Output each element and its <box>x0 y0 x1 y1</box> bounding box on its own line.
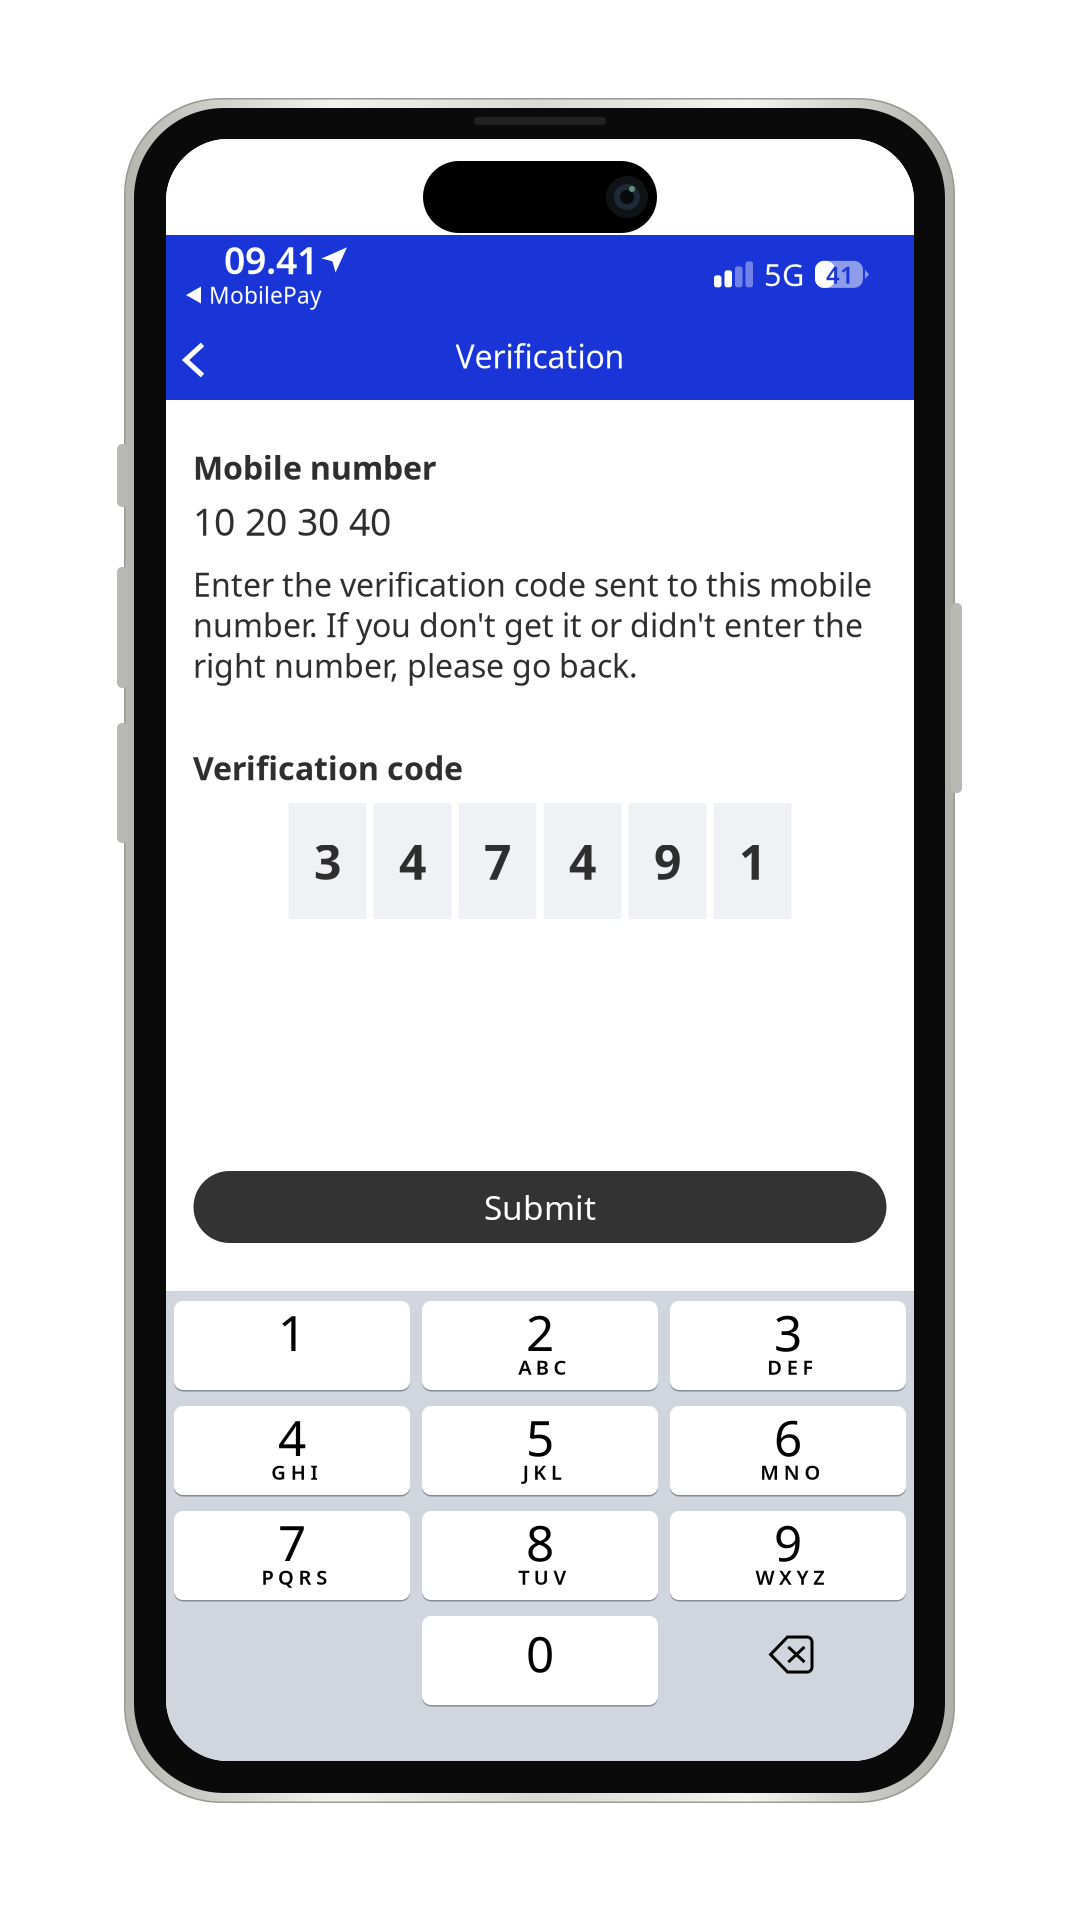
button[interactable]: 8 <box>422 1510 658 1601</box>
staticText: 5G <box>764 254 804 295</box>
staticText: 41 <box>826 258 854 290</box>
staticText: 10 20 30 40 <box>193 496 391 546</box>
button[interactable]: MobilePay <box>186 280 322 310</box>
staticText: 09.41 <box>224 235 318 285</box>
staticText: 7 <box>278 1509 306 1575</box>
staticText: WXYZ <box>755 1564 825 1590</box>
button[interactable]: Back <box>157 326 231 394</box>
staticText: 1 <box>739 829 766 893</box>
staticText: JKL <box>523 1459 562 1485</box>
staticText: 4 <box>399 829 426 893</box>
button[interactable]: 5 <box>422 1405 658 1496</box>
button[interactable]: 9 <box>670 1510 906 1601</box>
staticText: 2 <box>526 1299 554 1365</box>
staticText: MobilePay <box>209 280 322 310</box>
staticText: 3 <box>774 1299 802 1365</box>
staticText: Verification code <box>193 747 463 789</box>
button[interactable]: 3 <box>670 1300 906 1391</box>
staticText: 8 <box>526 1509 554 1575</box>
staticText: 9 <box>654 829 681 893</box>
staticText: PQRS <box>261 1564 327 1590</box>
staticText: GHI <box>271 1459 317 1485</box>
staticText: 0 <box>526 1620 554 1686</box>
button[interactable]: 7 <box>174 1510 410 1601</box>
staticText: Verification <box>455 335 624 377</box>
staticText: Submit <box>484 1185 596 1229</box>
button[interactable]: Submit <box>193 1171 886 1243</box>
button[interactable]: 4 <box>174 1405 410 1496</box>
staticText: TUV <box>518 1564 566 1590</box>
button[interactable]: 1 <box>174 1300 410 1391</box>
button[interactable]: Delete <box>670 1615 906 1706</box>
staticText: Enter the verification code sent to this… <box>193 563 872 687</box>
button[interactable]: 0 <box>422 1615 658 1706</box>
staticText: 1 <box>278 1299 306 1365</box>
button[interactable]: 6 <box>670 1405 906 1496</box>
staticText: 4 <box>569 829 596 893</box>
staticText: 7 <box>484 829 511 893</box>
staticText: 3 <box>314 829 341 893</box>
staticText: 9 <box>774 1509 802 1575</box>
staticText: Mobile number <box>193 446 436 488</box>
staticText: ABC <box>518 1354 566 1380</box>
staticText: MNO <box>760 1459 820 1485</box>
staticText: 4 <box>278 1404 306 1470</box>
staticText: 6 <box>774 1404 802 1470</box>
staticText: DEF <box>767 1354 813 1380</box>
button[interactable]: 2 <box>422 1300 658 1391</box>
staticText: 5 <box>526 1404 554 1470</box>
button[interactable]: Verification code 347491 <box>288 803 791 919</box>
